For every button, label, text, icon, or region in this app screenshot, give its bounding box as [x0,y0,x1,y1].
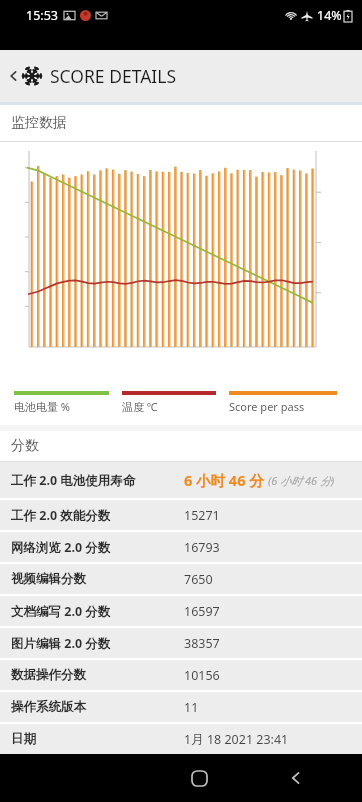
staticText: 图片编辑 2.0 分数 [11,635,111,652]
button[interactable]: 文档编写 2.0 分数 [0,596,362,626]
staticText: 1月 18 2021 23:41 [184,731,289,748]
staticText: 温度 ℃ [122,399,158,414]
staticText: 数据操作分数 [11,667,86,683]
button[interactable]: 网络浏览 2.0 分数 [0,532,362,562]
staticText: 16597 [184,603,220,620]
staticText: 文档编写 2.0 分数 [11,603,111,620]
staticText: 15:53 [26,7,58,24]
staticText: 15271 [184,507,220,524]
button[interactable]: 工作 2.0 效能分数 [0,500,362,530]
staticText: 7650 [184,571,213,588]
staticText: (6 小时 46 分) [268,473,335,488]
staticText: 38357 [184,635,220,652]
button[interactable]: 日期 [0,724,362,754]
staticText: 操作系统版本 [11,699,86,715]
button[interactable]: Back [0,50,362,102]
staticText: 16793 [184,539,220,556]
other: Back [7,69,21,83]
staticText: 工作 2.0 电池使用寿命 [11,472,136,489]
button[interactable]: 数据操作分数 [0,660,362,690]
staticText: 监控数据 [11,114,67,132]
staticText: 日期 [11,731,36,747]
button[interactable]: 操作系统版本 [0,692,362,722]
staticText: 电池电量 % [14,399,71,414]
button[interactable]: 工作 2.0 电池使用寿命 [0,462,362,498]
staticText: 工作 2.0 效能分数 [11,507,111,524]
staticText: 网络浏览 2.0 分数 [11,539,111,556]
button[interactable]: 视频编辑分数 [0,564,362,594]
button[interactable]: Home [177,756,221,800]
staticText: 14% [317,7,342,24]
staticText: 10156 [184,667,220,684]
staticText: 6 小时 46 分 [184,470,264,490]
staticText: 视频编辑分数 [11,571,86,587]
button[interactable]: 图片编辑 2.0 分数 [0,628,362,658]
staticText: Score per pass [229,399,305,414]
staticText: 11 [184,699,199,716]
staticText: SCORE DETAILS [50,64,177,88]
button[interactable]: Back [274,756,318,800]
staticText: 分数 [11,437,39,455]
